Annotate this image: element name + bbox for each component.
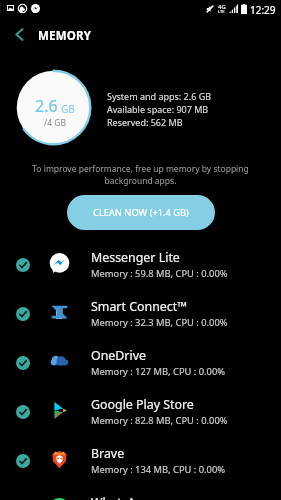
staticText: /4 GB (44, 117, 66, 129)
staticText: Brave (91, 445, 125, 462)
staticText: Memory : 134 MB, CPU : 0.00% (91, 463, 226, 476)
button[interactable]: Google Play Store (0, 387, 281, 436)
staticText: MEMORY (38, 28, 92, 44)
staticText: Messenger Lite (91, 249, 180, 266)
staticText: 12:29 (250, 3, 276, 17)
button[interactable]: Brave (0, 436, 281, 485)
staticText: Reserved: 562 MB (107, 116, 183, 128)
staticText: 4G (218, 3, 226, 11)
staticText: System and apps: 2.6 GB (107, 90, 212, 102)
staticText: OneDrive (91, 347, 146, 364)
button[interactable]: Smart Connect™ (0, 289, 281, 338)
button[interactable]: Messenger Lite (0, 240, 281, 289)
staticText: Memory : 32.3 MB, CPU : 0.00% (91, 316, 228, 329)
button[interactable]: CLEAN NOW (+1.4 GB) (67, 195, 215, 230)
staticText: Memory : 127 MB, CPU : 0.00% (91, 365, 226, 378)
staticText: 2.6 (35, 95, 58, 117)
staticText: Smart Connect™ (91, 298, 187, 315)
staticText: Google Play Store (91, 396, 194, 413)
staticText: Available space: 907 MB (107, 103, 209, 115)
button[interactable]: Back (7, 20, 32, 48)
staticText: Memory : 59.8 MB, CPU : 0.00% (91, 267, 228, 280)
staticText: LTE (218, 9, 225, 14)
staticText: To improve performance, free up memory b… (28, 163, 253, 187)
staticText: CLEAN NOW (+1.4 GB) (93, 206, 189, 219)
staticText: GB (61, 102, 75, 116)
staticText: Memory : 82.8 MB, CPU : 0.00% (91, 414, 228, 427)
button[interactable]: WhatsApp (0, 485, 281, 500)
button[interactable]: OneDrive (0, 338, 281, 387)
staticText: WhatsApp (91, 494, 151, 500)
